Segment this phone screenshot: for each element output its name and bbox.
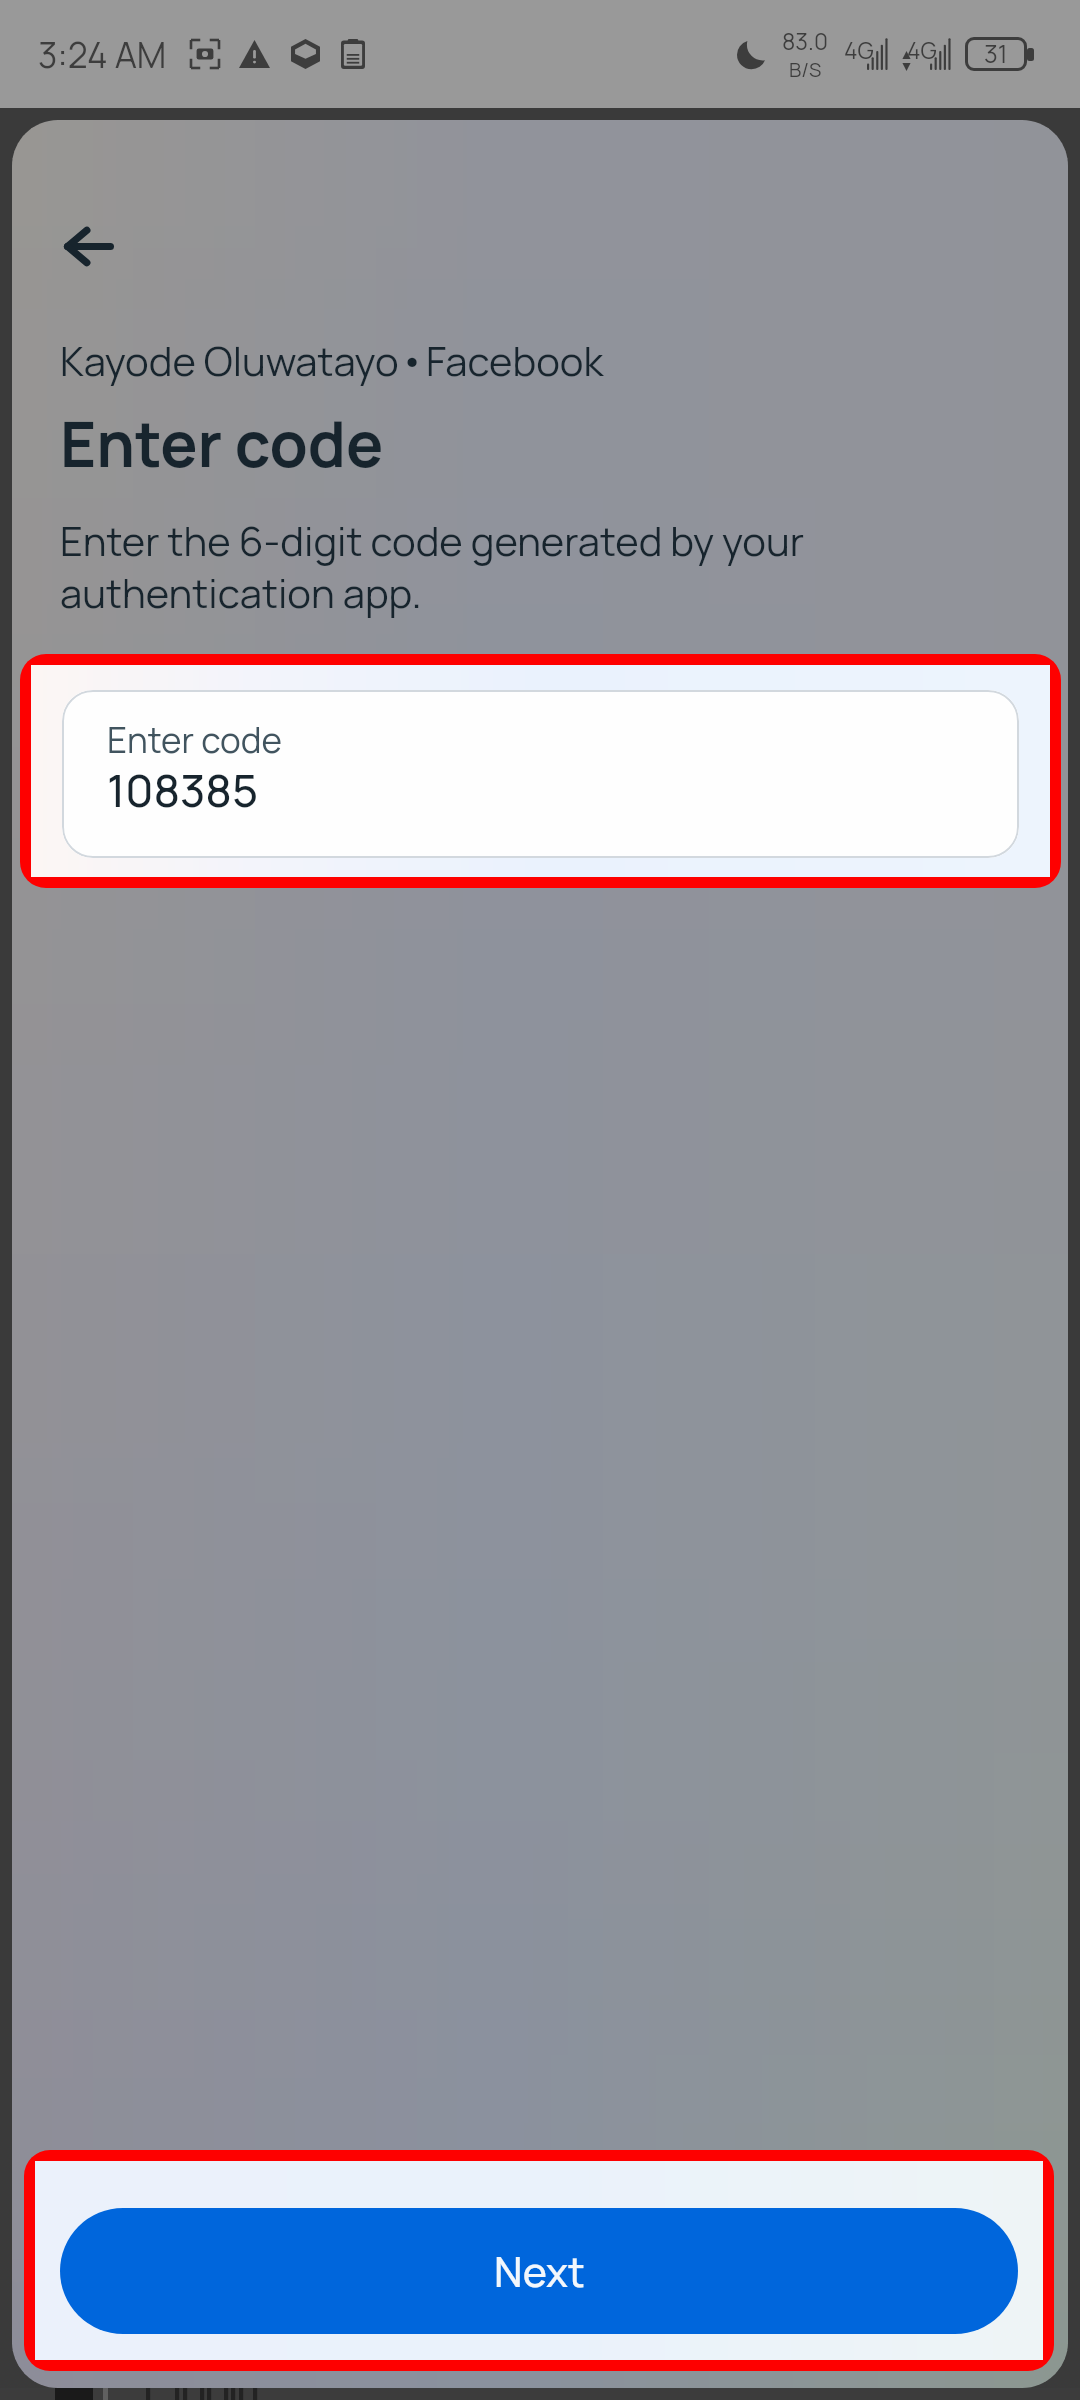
staticText: Kayode Oluwatayo (60, 333, 399, 388)
staticText: 31 (984, 36, 1008, 70)
button[interactable]: Next (60, 2208, 1018, 2334)
staticText: 3:24 AM (38, 31, 167, 79)
button[interactable]: Back (39, 203, 138, 290)
staticText: • (399, 332, 426, 387)
staticText: Enter the 6-digit code generated by your… (60, 513, 805, 620)
staticText: B/S (789, 56, 822, 83)
staticText: 4G (907, 34, 937, 65)
staticText: 83.0 (782, 25, 828, 56)
staticText: Facebook (426, 333, 604, 388)
staticText: Enter code (60, 401, 384, 486)
staticText: Enter code (107, 716, 282, 764)
staticText: 4G (844, 34, 874, 65)
staticText: Next (494, 2243, 585, 2299)
staticText: 108385 (107, 759, 259, 820)
button[interactable]: Enter code (62, 690, 1019, 858)
